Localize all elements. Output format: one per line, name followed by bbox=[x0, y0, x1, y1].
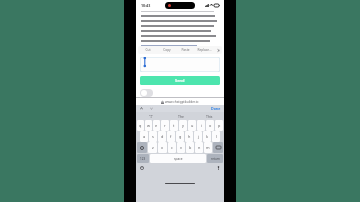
staticText: Paste bbox=[181, 48, 190, 52]
button[interactable]: Replace… bbox=[195, 46, 214, 54]
staticText: y bbox=[182, 123, 184, 128]
button[interactable]: a bbox=[140, 131, 148, 142]
button[interactable]: return bbox=[207, 154, 223, 163]
staticText: k bbox=[206, 134, 209, 139]
staticText: u bbox=[191, 123, 194, 128]
staticText: return bbox=[211, 157, 220, 161]
button[interactable]: b bbox=[186, 142, 194, 153]
staticText: q bbox=[139, 123, 142, 128]
button[interactable]: c bbox=[168, 142, 176, 153]
button[interactable]: space bbox=[150, 154, 206, 163]
button[interactable]: Shift bbox=[137, 142, 147, 153]
button[interactable]: More menu options bbox=[214, 46, 222, 54]
button[interactable]: e bbox=[153, 120, 160, 131]
button[interactable]: The bbox=[166, 112, 195, 120]
button[interactable]: h bbox=[185, 131, 193, 142]
button[interactable]: Cut bbox=[138, 46, 157, 54]
staticText: c bbox=[171, 145, 173, 150]
staticText: g bbox=[179, 134, 182, 139]
staticText: d bbox=[161, 134, 164, 139]
staticText: i bbox=[201, 123, 202, 128]
button[interactable]: Emoji keyboard bbox=[139, 165, 145, 171]
button[interactable]: Delete bbox=[213, 142, 223, 153]
button[interactable] bbox=[140, 57, 220, 72]
button[interactable]: Paste bbox=[176, 46, 195, 54]
button[interactable]: s bbox=[149, 131, 157, 142]
staticText: l bbox=[216, 134, 217, 139]
staticText: f bbox=[170, 134, 172, 139]
button[interactable]: w bbox=[145, 120, 152, 131]
button[interactable]: Copy bbox=[157, 46, 176, 54]
staticText: Send bbox=[175, 78, 185, 83]
button[interactable]: z bbox=[148, 142, 157, 153]
button[interactable]: q bbox=[137, 120, 144, 131]
staticText: This bbox=[206, 114, 213, 119]
staticText: Cut bbox=[145, 48, 151, 52]
button[interactable]: t bbox=[170, 120, 178, 131]
button[interactable]: n bbox=[195, 142, 203, 153]
button[interactable]: Send bbox=[140, 76, 220, 85]
button[interactable]: v bbox=[177, 142, 185, 153]
button[interactable]: Done bbox=[211, 106, 221, 111]
staticText: m bbox=[206, 145, 210, 150]
staticText: a bbox=[143, 134, 146, 139]
staticText: o bbox=[209, 123, 212, 128]
staticText: Replace… bbox=[197, 48, 212, 52]
staticText: space bbox=[174, 157, 183, 161]
staticText: 10:43 bbox=[141, 3, 151, 8]
staticText: x bbox=[161, 145, 164, 150]
staticText: v bbox=[180, 145, 182, 150]
staticText: t bbox=[173, 123, 175, 128]
button[interactable]: 123 bbox=[137, 154, 149, 163]
button[interactable]: k bbox=[203, 131, 211, 142]
staticText: e bbox=[155, 123, 158, 128]
button[interactable]: Next field bbox=[149, 106, 154, 111]
staticText: Done bbox=[211, 106, 221, 111]
button[interactable]: Previous field bbox=[139, 106, 144, 111]
button[interactable]: m bbox=[204, 142, 212, 153]
staticText: n bbox=[198, 145, 201, 150]
staticText: w bbox=[147, 123, 150, 128]
staticText: r bbox=[164, 123, 166, 128]
staticText: 123 bbox=[140, 157, 146, 161]
button[interactable]: p bbox=[215, 120, 223, 131]
button[interactable]: x bbox=[158, 142, 167, 153]
button[interactable]: "I" bbox=[136, 112, 166, 120]
staticText: b bbox=[189, 145, 192, 150]
staticText: j bbox=[198, 134, 199, 139]
button[interactable]: d bbox=[158, 131, 166, 142]
staticText: h bbox=[188, 134, 191, 139]
staticText: s bbox=[152, 134, 154, 139]
button[interactable]: This bbox=[195, 112, 224, 120]
staticText: p bbox=[218, 123, 221, 128]
button[interactable]: o bbox=[206, 120, 214, 131]
button[interactable]: g bbox=[176, 131, 184, 142]
staticText: z bbox=[152, 145, 154, 150]
button[interactable]: j bbox=[194, 131, 202, 142]
button[interactable]: Toggle option bbox=[140, 89, 153, 97]
button[interactable]: Dictation bbox=[215, 165, 221, 171]
staticText: www.chatgptbuilder.io bbox=[165, 100, 199, 104]
button[interactable]: r bbox=[161, 120, 169, 131]
button[interactable]: f bbox=[167, 131, 175, 142]
staticText: "I" bbox=[149, 114, 153, 119]
staticText: The bbox=[178, 114, 184, 119]
button[interactable]: u bbox=[188, 120, 196, 131]
button[interactable]: i bbox=[197, 120, 205, 131]
staticText: Copy bbox=[163, 48, 171, 52]
button[interactable]: l bbox=[212, 131, 220, 142]
button[interactable]: www.chatgptbuilder.io bbox=[136, 98, 224, 105]
button[interactable]: y bbox=[179, 120, 187, 131]
